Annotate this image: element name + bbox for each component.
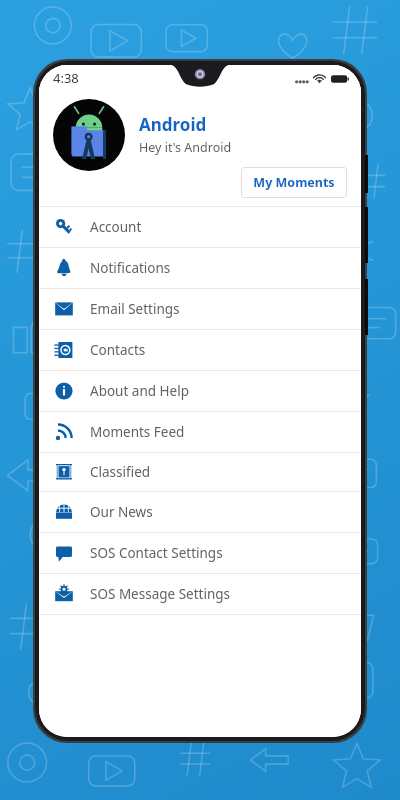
button[interactable]: About and Help: [39, 371, 361, 411]
button[interactable]: Profile picture: [53, 99, 125, 171]
staticText: Contacts: [90, 341, 146, 359]
staticText: My Moments: [253, 174, 335, 191]
staticText: Account: [90, 218, 142, 236]
staticText: Hey it's Android: [139, 139, 232, 156]
button[interactable]: Classified: [39, 453, 361, 491]
staticText: Moments Feed: [90, 423, 185, 441]
staticText: Classified: [90, 463, 151, 481]
button[interactable]: Email Settings: [39, 289, 361, 329]
staticText: Notifications: [90, 259, 171, 277]
button[interactable]: Contacts: [39, 330, 361, 370]
button[interactable]: My Moments: [241, 167, 347, 198]
staticText: Android: [139, 113, 207, 136]
staticText: About and Help: [90, 382, 189, 400]
button[interactable]: Notifications: [39, 248, 361, 288]
staticText: Our News: [90, 503, 153, 521]
staticText: Email Settings: [90, 300, 180, 318]
staticText: SOS Message Settings: [90, 585, 231, 603]
button[interactable]: SOS Message Settings: [39, 574, 361, 614]
button[interactable]: Account: [39, 207, 361, 247]
button[interactable]: Our News: [39, 492, 361, 532]
staticText: SOS Contact Settings: [90, 544, 223, 562]
staticText: 4:38: [53, 69, 79, 87]
button[interactable]: SOS Contact Settings: [39, 533, 361, 573]
button[interactable]: Moments Feed: [39, 412, 361, 452]
